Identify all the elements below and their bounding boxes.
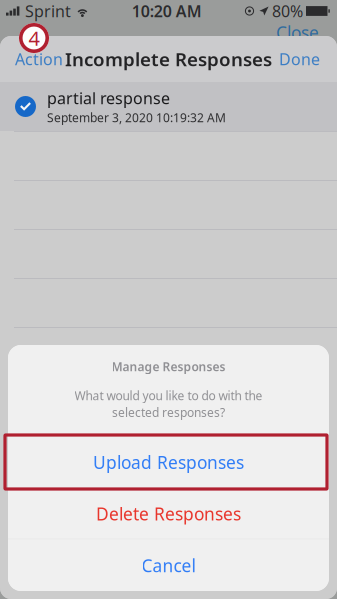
staticText: Incomplete Responses xyxy=(65,47,272,71)
staticText: Upload Responses xyxy=(93,451,244,474)
staticText: partial response xyxy=(47,87,170,109)
button[interactable]: Action xyxy=(0,36,71,82)
staticText: selected responses? xyxy=(112,404,225,420)
staticText: 4 xyxy=(28,25,39,51)
staticText: 80% xyxy=(272,0,303,22)
button[interactable]: Upload Responses xyxy=(8,436,329,488)
staticText: 10:20 AM xyxy=(132,0,202,22)
staticText: Sprint xyxy=(25,0,71,22)
staticText: Delete Responses xyxy=(96,502,241,525)
staticText: What would you like to do with the xyxy=(74,387,262,403)
button[interactable]: Cancel xyxy=(8,539,329,591)
button[interactable]: partial response xyxy=(0,82,337,131)
staticText: Manage Responses xyxy=(111,359,225,374)
staticText: Cancel xyxy=(141,554,195,577)
staticText: Action xyxy=(15,48,63,70)
button[interactable]: Done xyxy=(271,36,337,82)
button[interactable]: Close xyxy=(276,21,337,44)
staticText: September 3, 2020 10:19:32 AM xyxy=(47,110,226,126)
staticText: Done xyxy=(279,48,320,70)
staticText: Close xyxy=(276,21,319,44)
button[interactable]: Delete Responses xyxy=(8,489,329,539)
